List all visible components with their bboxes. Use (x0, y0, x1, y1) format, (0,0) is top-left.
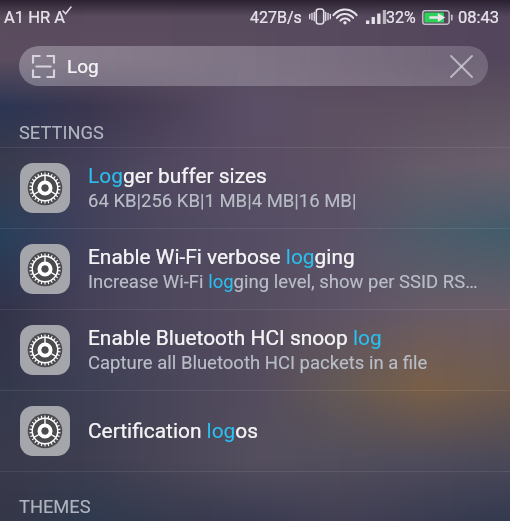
button[interactable]: Clear search (446, 51, 476, 81)
button[interactable]: Logger buffer sizes (0, 148, 510, 228)
staticText: Logger buffer sizes (88, 164, 267, 188)
staticText: 32% (386, 8, 416, 27)
staticText: SETTINGS (19, 122, 104, 143)
staticText: Certification logos (88, 419, 259, 443)
staticText: Enable Wi-Fi verbose logging (88, 245, 355, 269)
staticText: Enable Bluetooth HCI snoop log (88, 326, 382, 350)
staticText: A1 HR A (4, 8, 65, 27)
button[interactable]: Log (19, 46, 488, 86)
button[interactable]: Enable Wi-Fi verbose logging (0, 229, 510, 309)
staticText: 427B/s (250, 8, 302, 27)
button[interactable]: Certification logos (0, 391, 510, 471)
button[interactable]: Enable Bluetooth HCI snoop log (0, 310, 510, 390)
staticText: THEMES (19, 496, 91, 517)
staticText: Capture all Bluetooth HCI packets in a f… (88, 352, 428, 374)
staticText: 64 KB|256 KB|1 MB|4 MB|16 MB| (88, 190, 357, 212)
staticText: Log (67, 55, 99, 77)
staticText: Increase Wi-Fi logging level, show per S… (88, 271, 478, 293)
staticText: 08:43 (458, 8, 500, 27)
